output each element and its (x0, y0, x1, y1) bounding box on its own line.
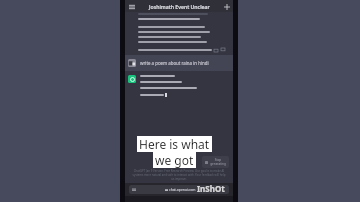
button[interactable]: write a poem about raina in hindi (125, 55, 233, 71)
staticText: write a poem about raina in hindi (140, 60, 209, 66)
button[interactable]: AA (129, 185, 229, 194)
button[interactable] (125, 71, 233, 101)
staticText: Here is what (139, 136, 210, 152)
staticText: InShOt (197, 183, 225, 194)
button[interactable]: Stop generating (202, 156, 229, 168)
staticText: we got (155, 152, 194, 168)
button[interactable]: New chat (222, 2, 231, 11)
staticText: Joshimath Event Unclear (149, 3, 210, 10)
staticText: chat.openai.com (169, 187, 196, 192)
button[interactable]: Thumbs down (219, 46, 226, 53)
staticText: AA (132, 188, 137, 192)
staticText: ChatGPT Jan 9 Version. Free Research Pre… (131, 169, 227, 181)
staticText: Stop generating (210, 158, 226, 166)
button[interactable]: Menu (127, 2, 136, 11)
button[interactable]: Thumbs up (212, 46, 219, 53)
